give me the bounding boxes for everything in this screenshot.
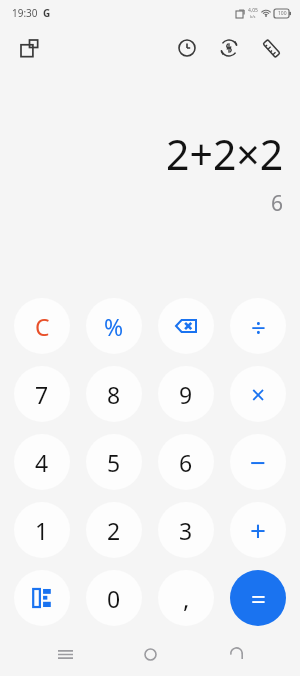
- staticText: k/s: [250, 14, 256, 19]
- staticText: 1: [35, 515, 49, 546]
- button[interactable]: Floating window: [12, 31, 46, 65]
- staticText: 3: [179, 515, 193, 546]
- button[interactable]: 4: [14, 434, 70, 490]
- button[interactable]: Home: [129, 636, 171, 672]
- button[interactable]: ,: [158, 570, 214, 626]
- staticText: 4,05: [248, 7, 258, 14]
- staticText: ÷: [251, 309, 266, 344]
- button[interactable]: Unit converter: [254, 31, 288, 65]
- button[interactable]: 2: [86, 502, 142, 558]
- staticText: ×: [251, 377, 266, 411]
- button[interactable]: 9: [158, 366, 214, 422]
- staticText: 100: [278, 10, 287, 17]
- staticText: 7: [35, 379, 49, 410]
- button[interactable]: C: [14, 298, 70, 354]
- staticText: +: [250, 511, 267, 549]
- button[interactable]: History: [170, 31, 204, 65]
- button[interactable]: ×: [230, 366, 286, 422]
- button[interactable]: Currency converter: [212, 31, 246, 65]
- staticText: 9: [179, 379, 193, 410]
- staticText: 6: [271, 189, 284, 218]
- staticText: 2+2×2: [166, 126, 284, 182]
- staticText: 2: [107, 515, 121, 546]
- button[interactable]: +: [230, 502, 286, 558]
- button[interactable]: =: [230, 570, 286, 626]
- staticText: G: [43, 6, 51, 20]
- button[interactable]: %: [86, 298, 142, 354]
- button[interactable]: Back: [215, 636, 257, 672]
- staticText: 4: [35, 447, 49, 478]
- staticText: 5: [107, 447, 121, 478]
- staticText: ,: [183, 582, 190, 615]
- staticText: =: [251, 581, 266, 616]
- button[interactable]: 7: [14, 366, 70, 422]
- staticText: 6: [179, 447, 193, 478]
- button[interactable]: 0: [86, 570, 142, 626]
- staticText: %: [104, 311, 124, 342]
- button[interactable]: ÷: [230, 298, 286, 354]
- staticText: 0: [107, 583, 121, 614]
- button[interactable]: Backspace: [158, 298, 214, 354]
- staticText: C: [35, 311, 50, 342]
- staticText: −: [250, 443, 267, 481]
- button[interactable]: −: [230, 434, 286, 490]
- staticText: 8: [107, 379, 121, 410]
- button[interactable]: 5: [86, 434, 142, 490]
- button[interactable]: Recents: [44, 636, 86, 672]
- button[interactable]: 3: [158, 502, 214, 558]
- button[interactable]: 6: [158, 434, 214, 490]
- button[interactable]: 1: [14, 502, 70, 558]
- button[interactable]: Scientific calculator: [14, 570, 70, 626]
- button[interactable]: 8: [86, 366, 142, 422]
- staticText: 19:30: [12, 6, 38, 20]
